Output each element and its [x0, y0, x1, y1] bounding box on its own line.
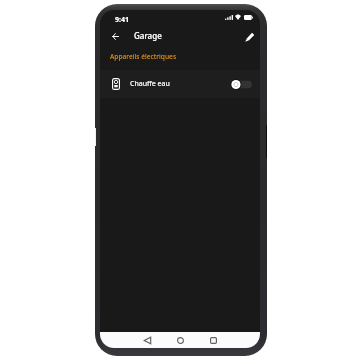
button[interactable]: Chauffe eau [100, 70, 260, 98]
staticText: Chauffe eau [130, 79, 170, 89]
button[interactable]: Home [172, 332, 189, 348]
staticText: 9:41 [115, 15, 129, 25]
button[interactable]: Back [107, 28, 123, 44]
button[interactable]: Recents [205, 332, 222, 348]
staticText: Appareils électriques [110, 52, 177, 61]
button[interactable]: Back [139, 332, 156, 348]
button[interactable]: Edit [242, 29, 258, 45]
button[interactable]: Toggle Chauffe eau [231, 79, 252, 90]
staticText: Garage [134, 30, 162, 41]
